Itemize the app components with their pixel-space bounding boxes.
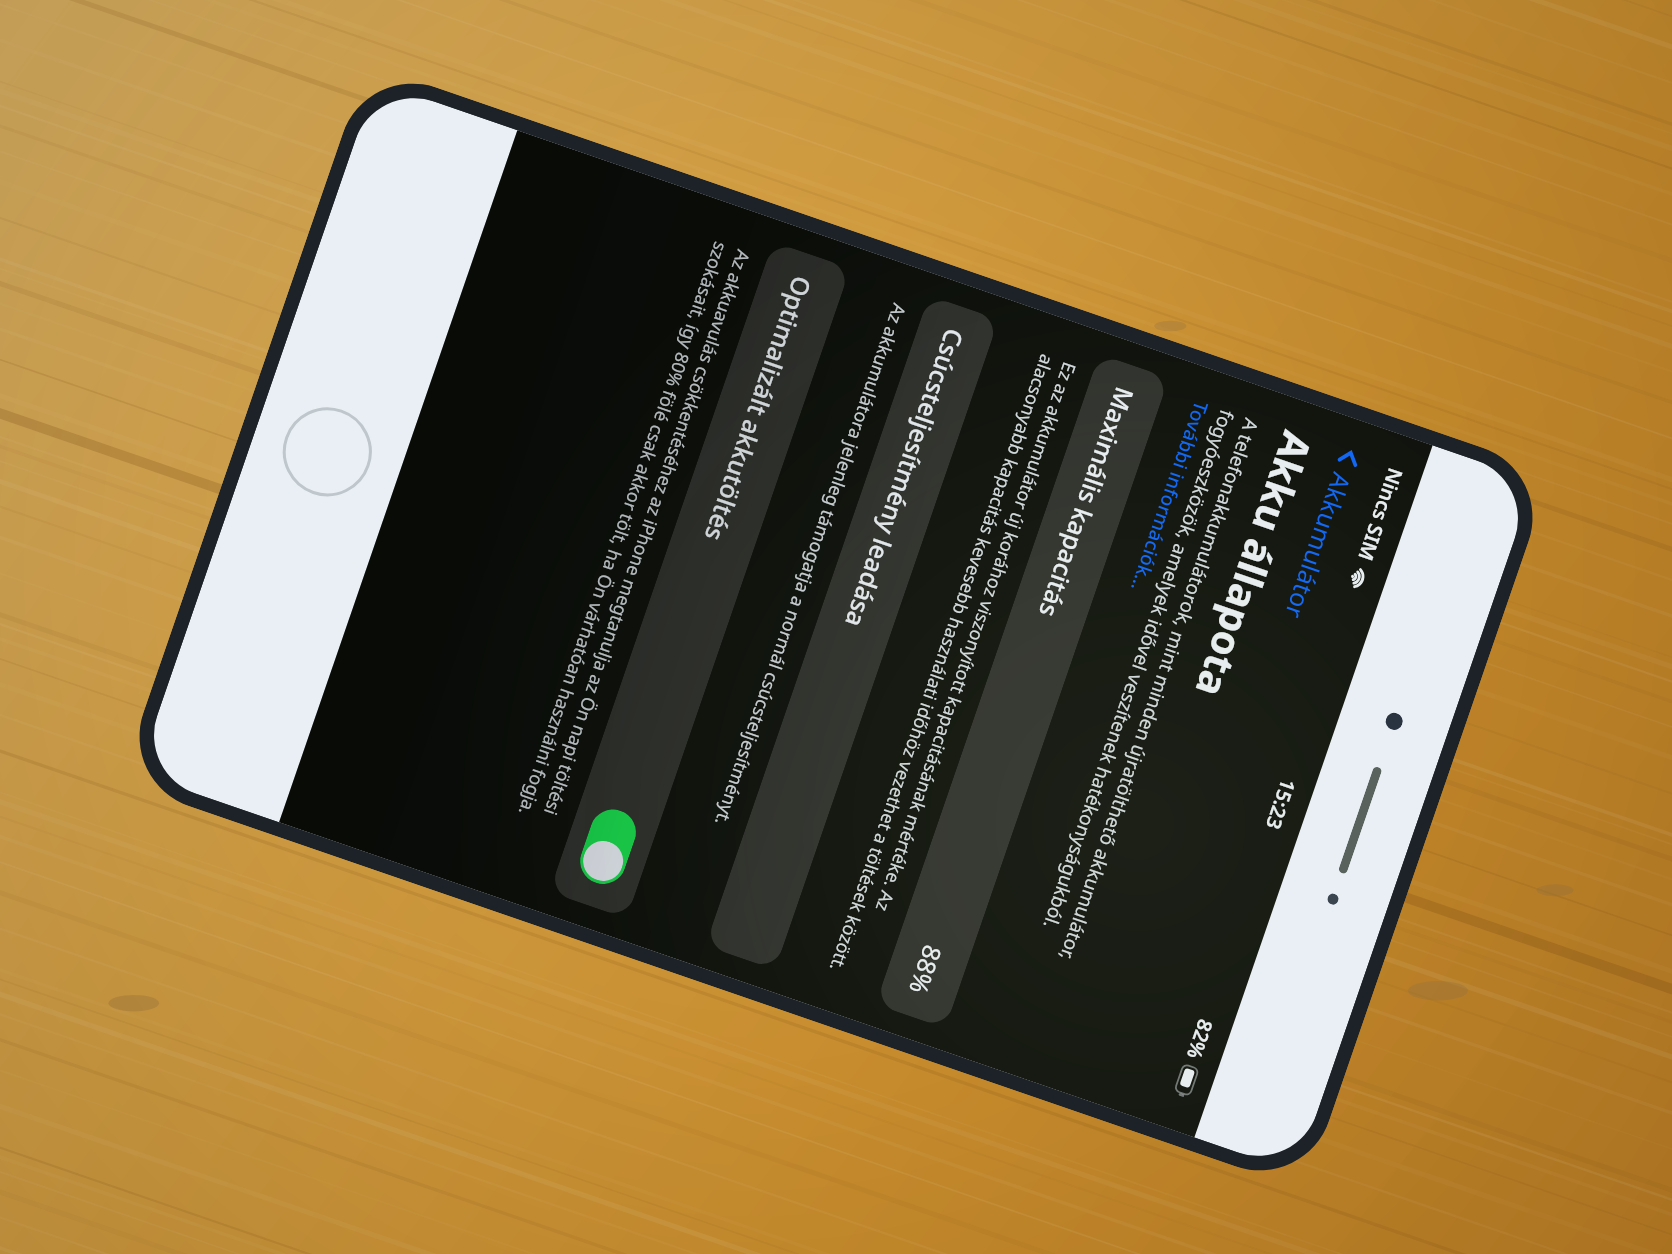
- staticText: 88%: [902, 941, 950, 999]
- staticText: Ez az akkumulátor új korához viszonyítot…: [824, 351, 1082, 983]
- staticText: A telefonakkumulátorok, mint minden újra…: [1000, 407, 1265, 1051]
- button[interactable]: Csúcsteljesítmény leadása: [705, 295, 999, 970]
- staticText: Maximális kapacitás: [1032, 383, 1142, 622]
- staticText: 15:23: [1260, 776, 1302, 834]
- staticText: Az akkuavulás csökkentéséhez az iPhone m…: [498, 239, 756, 871]
- staticText: Optimalizált akkutöltés: [697, 272, 820, 546]
- button[interactable]: További információk…: [1125, 398, 1216, 596]
- staticText: 82%: [1181, 1016, 1219, 1063]
- staticText: Az akkumulátora jelenleg támogatja a nor…: [709, 300, 912, 829]
- staticText: Akkumulátor: [1278, 468, 1359, 623]
- button[interactable]: Optimalizált akkutöltés: [549, 241, 851, 919]
- staticText: Akku állapota: [1184, 425, 1326, 705]
- button[interactable]: Optimalizált akkutöltés kapcsoló: [574, 803, 642, 890]
- button[interactable]: Akkumulátor: [1269, 430, 1378, 635]
- staticText: Nincs SIM: [1352, 464, 1409, 565]
- staticText: Csúcsteljesítmény leadása: [838, 324, 972, 632]
- button[interactable]: Maximális kapacitás: [875, 354, 1169, 1028]
